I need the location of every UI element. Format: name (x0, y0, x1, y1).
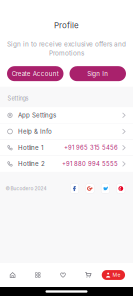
button[interactable]: Google Plus (86, 184, 94, 193)
button[interactable]: Wishlist (50, 272, 76, 278)
staticText: Settings (7, 95, 28, 102)
staticText: Create Account (12, 70, 59, 77)
button[interactable]: Categories (25, 272, 50, 278)
staticText: Me (112, 272, 120, 278)
staticText: Sign In (87, 70, 108, 77)
staticText: +91 965 315 5456 (64, 144, 118, 151)
button[interactable]: App Settings (0, 107, 133, 123)
button[interactable]: Home (0, 272, 25, 278)
staticText: Promotions (49, 49, 84, 57)
staticText: App Settings (18, 112, 56, 119)
staticText: Sign in to receive exclusive offers and (7, 40, 126, 48)
button[interactable]: Facebook (70, 184, 79, 193)
button[interactable]: Hotline 1 (0, 140, 133, 155)
button[interactable]: Cart (76, 272, 101, 278)
button[interactable]: Help & Info (0, 124, 133, 139)
button[interactable]: Me (102, 270, 125, 280)
staticText: Hotline 2 (18, 160, 45, 168)
staticText: Profile (54, 20, 79, 30)
button[interactable]: Sign In (69, 66, 126, 81)
button[interactable]: Create Account (7, 66, 63, 81)
staticText: Help & Info (18, 128, 52, 135)
staticText: Hotline 1 (18, 144, 43, 151)
button[interactable]: Pinterest (117, 184, 125, 193)
button[interactable]: Twitter (101, 184, 110, 193)
button[interactable]: Hotline 2 (0, 156, 133, 172)
staticText: © Bucodero 2024 (5, 186, 46, 191)
staticText: +91 880 994 5555 (62, 160, 118, 167)
